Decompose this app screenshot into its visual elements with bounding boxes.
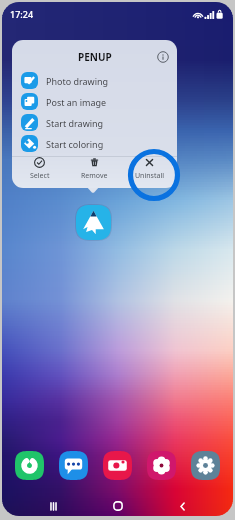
staticText: Post an image xyxy=(46,96,107,108)
button[interactable]: Uninstall xyxy=(122,157,177,181)
staticText: PENUP xyxy=(78,50,112,64)
button[interactable]: Start drawing xyxy=(12,112,177,133)
button[interactable]: Start coloring xyxy=(12,133,177,154)
staticText: Uninstall xyxy=(135,171,164,181)
button[interactable]: App info xyxy=(157,51,169,63)
button[interactable]: Select xyxy=(12,157,67,181)
button[interactable]: Home xyxy=(105,496,131,516)
button[interactable]: Messages xyxy=(59,451,88,480)
staticText: Photo drawing xyxy=(46,75,109,87)
button[interactable]: Recents xyxy=(40,496,66,516)
button[interactable]: PENUP xyxy=(75,204,112,241)
staticText: Remove xyxy=(81,171,108,181)
button[interactable]: Post an image xyxy=(12,91,177,112)
staticText: Start drawing xyxy=(46,117,104,129)
staticText: Start coloring xyxy=(46,138,104,150)
button[interactable]: Phone xyxy=(15,451,44,480)
button[interactable]: Photo drawing xyxy=(12,70,177,91)
button[interactable]: Camera xyxy=(103,451,132,480)
staticText: Select xyxy=(30,171,50,181)
button[interactable]: Back xyxy=(169,496,195,516)
button[interactable]: Remove xyxy=(67,157,122,181)
button[interactable]: Settings xyxy=(191,451,220,480)
staticText: 17:24 xyxy=(10,8,34,20)
button[interactable]: Gallery xyxy=(147,451,176,480)
